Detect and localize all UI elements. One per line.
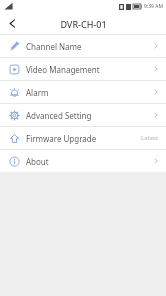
staticText: Latest [141,134,159,142]
button[interactable]: Advanced Setting [0,104,166,126]
button[interactable]: Alarm [0,81,166,103]
button[interactable]: Channel Name [0,35,166,57]
staticText: 9:39 AM [144,3,163,10]
staticText: Firmware Upgrade [26,133,97,144]
button[interactable]: Video Management [0,58,166,80]
button[interactable]: Firmware Upgrade [0,127,166,149]
staticText: About [26,156,49,167]
button[interactable]: Back [0,12,24,35]
staticText: DVR-CH-01 [60,18,107,30]
staticText: Advanced Setting [26,110,92,121]
staticText: Channel Name [26,41,82,52]
staticText: Alarm [26,87,49,98]
button[interactable]: About [0,150,166,172]
staticText: Video Management [26,64,100,75]
